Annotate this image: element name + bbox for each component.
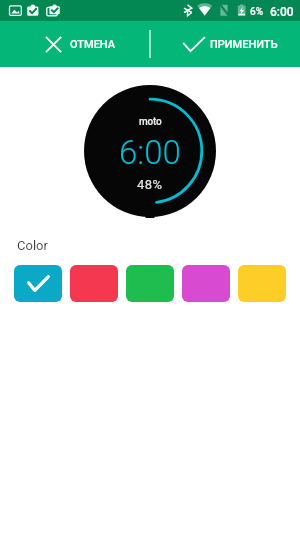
staticText: 6% [250,6,264,18]
staticText: moto [139,116,162,128]
staticText: 48% [137,177,163,192]
staticText: ОТМЕНА [70,38,116,51]
staticText: 6:00 [270,5,294,19]
button[interactable]: Cyan [14,265,62,302]
staticText: ПРИМЕНИТЬ [210,38,278,51]
button[interactable]: ПРИМЕНИТЬ [149,21,300,67]
button[interactable]: Red [70,265,118,302]
button[interactable]: ОТМЕНА [0,21,149,67]
staticText: Color [17,238,48,253]
button[interactable]: Green [126,265,174,302]
button[interactable]: Magenta [182,265,230,302]
button[interactable]: Yellow [238,265,286,302]
staticText: 6:00 [119,133,181,172]
